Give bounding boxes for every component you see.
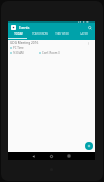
staticText: Conf. Room 3 bbox=[42, 51, 60, 55]
button[interactable]: Open navigation drawer bbox=[11, 25, 16, 30]
button[interactable]: THIS WEEK bbox=[51, 31, 73, 40]
button[interactable]: Recent apps bbox=[65, 152, 73, 160]
staticText: TODAY bbox=[14, 32, 23, 36]
staticText: LATER bbox=[80, 32, 88, 36]
button[interactable]: TODAY bbox=[8, 31, 29, 40]
staticText: Events bbox=[19, 25, 30, 30]
staticText: TOMORROW bbox=[32, 32, 48, 36]
button[interactable]: TOMORROW bbox=[29, 31, 51, 40]
button[interactable]: PC Time bbox=[8, 46, 95, 50]
staticText: THIS WEEK bbox=[55, 32, 69, 36]
button[interactable]: Home bbox=[47, 152, 55, 160]
button[interactable]: Back bbox=[29, 152, 37, 160]
button[interactable]: LATER bbox=[73, 31, 95, 40]
staticText: 9:30 AM bbox=[13, 51, 24, 55]
button[interactable]: Create event bbox=[85, 142, 93, 150]
staticText: PC Time bbox=[13, 46, 24, 50]
staticText: GDG Meeting 2016 bbox=[10, 41, 39, 45]
button[interactable]: More options bbox=[86, 41, 91, 46]
button[interactable]: Search bbox=[86, 24, 93, 31]
button[interactable]: 9:30 AM bbox=[8, 51, 95, 55]
